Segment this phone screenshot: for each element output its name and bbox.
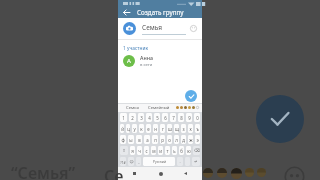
staticText: ,	[138, 159, 140, 165]
button[interactable]: п	[152, 135, 158, 144]
staticText: а	[146, 137, 149, 143]
button[interactable]: А	[118, 53, 202, 69]
staticText: Семья	[126, 105, 139, 111]
staticText: с	[145, 148, 148, 154]
button[interactable]: в	[136, 135, 142, 144]
button[interactable]: Семья	[119, 103, 145, 112]
staticText: Создать группу	[137, 8, 184, 17]
button[interactable]: б	[179, 146, 184, 155]
staticText: ☺	[129, 159, 134, 164]
button[interactable]: й	[120, 124, 124, 133]
button[interactable]: Home	[156, 169, 165, 178]
button[interactable]: ь	[172, 146, 177, 155]
staticText: Се	[104, 165, 124, 180]
button[interactable]: у	[132, 124, 137, 133]
button[interactable]: ъ	[195, 124, 200, 133]
button[interactable]: х	[188, 124, 193, 133]
button[interactable]: и	[158, 146, 163, 155]
button[interactable]: ч	[137, 146, 142, 155]
staticText: х	[189, 126, 192, 132]
button[interactable]: д	[181, 135, 186, 144]
staticText: б	[180, 148, 183, 154]
staticText: А	[127, 57, 131, 65]
button[interactable]: 8	[178, 113, 184, 122]
button[interactable]: Confirm	[256, 95, 304, 143]
staticText: 4	[148, 115, 151, 121]
button[interactable]: ?1#	[120, 157, 126, 166]
button[interactable]: р	[160, 135, 165, 144]
staticText: Анна	[140, 54, 153, 61]
button[interactable]: 1	[120, 113, 127, 122]
button[interactable]: е	[146, 124, 151, 133]
staticText: ж	[189, 137, 193, 143]
button[interactable]: ,	[136, 157, 141, 166]
staticText: я	[131, 148, 134, 154]
staticText: ⌫	[194, 148, 200, 153]
button[interactable]: ф	[120, 135, 126, 144]
button[interactable]: ж	[188, 135, 193, 144]
staticText: Семейный	[148, 105, 170, 111]
button[interactable]: ы	[128, 135, 134, 144]
staticText: 1	[122, 115, 125, 121]
button[interactable]: 9	[186, 113, 192, 122]
button[interactable]: я	[130, 146, 135, 155]
button[interactable]: Семейный	[145, 103, 173, 112]
button[interactable]: Back	[121, 6, 132, 18]
button[interactable]: с	[144, 146, 149, 155]
button[interactable]: 5	[154, 113, 160, 122]
staticText: “Семья”	[11, 162, 76, 180]
button[interactable]: м	[151, 146, 156, 155]
staticText: 3	[140, 115, 143, 121]
staticText: з	[182, 126, 185, 132]
button[interactable]	[173, 103, 201, 112]
staticText: о	[168, 137, 171, 143]
button[interactable]: ш	[167, 124, 172, 133]
button[interactable]: щ	[174, 124, 179, 133]
button[interactable]: н	[153, 124, 158, 133]
button[interactable]: 7	[170, 113, 176, 122]
button[interactable]: 0	[194, 113, 200, 122]
staticText: ъ	[196, 126, 199, 132]
button[interactable]: ☺	[128, 157, 134, 166]
staticText: ы	[129, 137, 133, 143]
staticText: ш	[168, 126, 172, 132]
staticText: ь	[173, 148, 176, 154]
button[interactable]: к	[139, 124, 144, 133]
button[interactable]: ⌫	[193, 146, 200, 155]
staticText: э	[196, 137, 199, 143]
button[interactable]: Set group photo	[123, 22, 136, 35]
button[interactable]: Back	[181, 169, 190, 178]
button[interactable]: т	[165, 146, 170, 155]
button[interactable]: 4	[146, 113, 152, 122]
button[interactable]: г	[160, 124, 165, 133]
staticText: 8	[180, 115, 183, 121]
staticText: Русский	[153, 159, 166, 164]
button[interactable]: 6	[162, 113, 168, 122]
staticText: ф	[121, 137, 125, 143]
button[interactable]: ⇧	[120, 146, 128, 155]
staticText: Семья	[142, 23, 162, 32]
button[interactable]: 2	[129, 113, 136, 122]
button[interactable]: о	[167, 135, 172, 144]
button[interactable]: э	[195, 135, 200, 144]
button[interactable]: л	[174, 135, 179, 144]
staticText: щ	[175, 126, 179, 132]
button[interactable]: ↵	[192, 157, 200, 166]
staticText: 5	[156, 115, 159, 121]
staticText: н	[154, 126, 157, 132]
button[interactable]: Emoji keyboard	[189, 24, 198, 33]
button[interactable]: Русский	[143, 157, 175, 166]
staticText: .	[179, 159, 181, 165]
button[interactable]: ю	[186, 146, 191, 155]
staticText: ⇧	[122, 148, 126, 153]
button[interactable]: ц	[126, 124, 130, 133]
button[interactable]: а	[144, 135, 150, 144]
button[interactable]: з	[181, 124, 186, 133]
button[interactable]: 3	[138, 113, 144, 122]
button[interactable]: Recent apps	[130, 169, 139, 178]
staticText: ч	[138, 148, 141, 154]
staticText: г	[162, 126, 164, 132]
button[interactable]: Create group	[185, 90, 197, 102]
